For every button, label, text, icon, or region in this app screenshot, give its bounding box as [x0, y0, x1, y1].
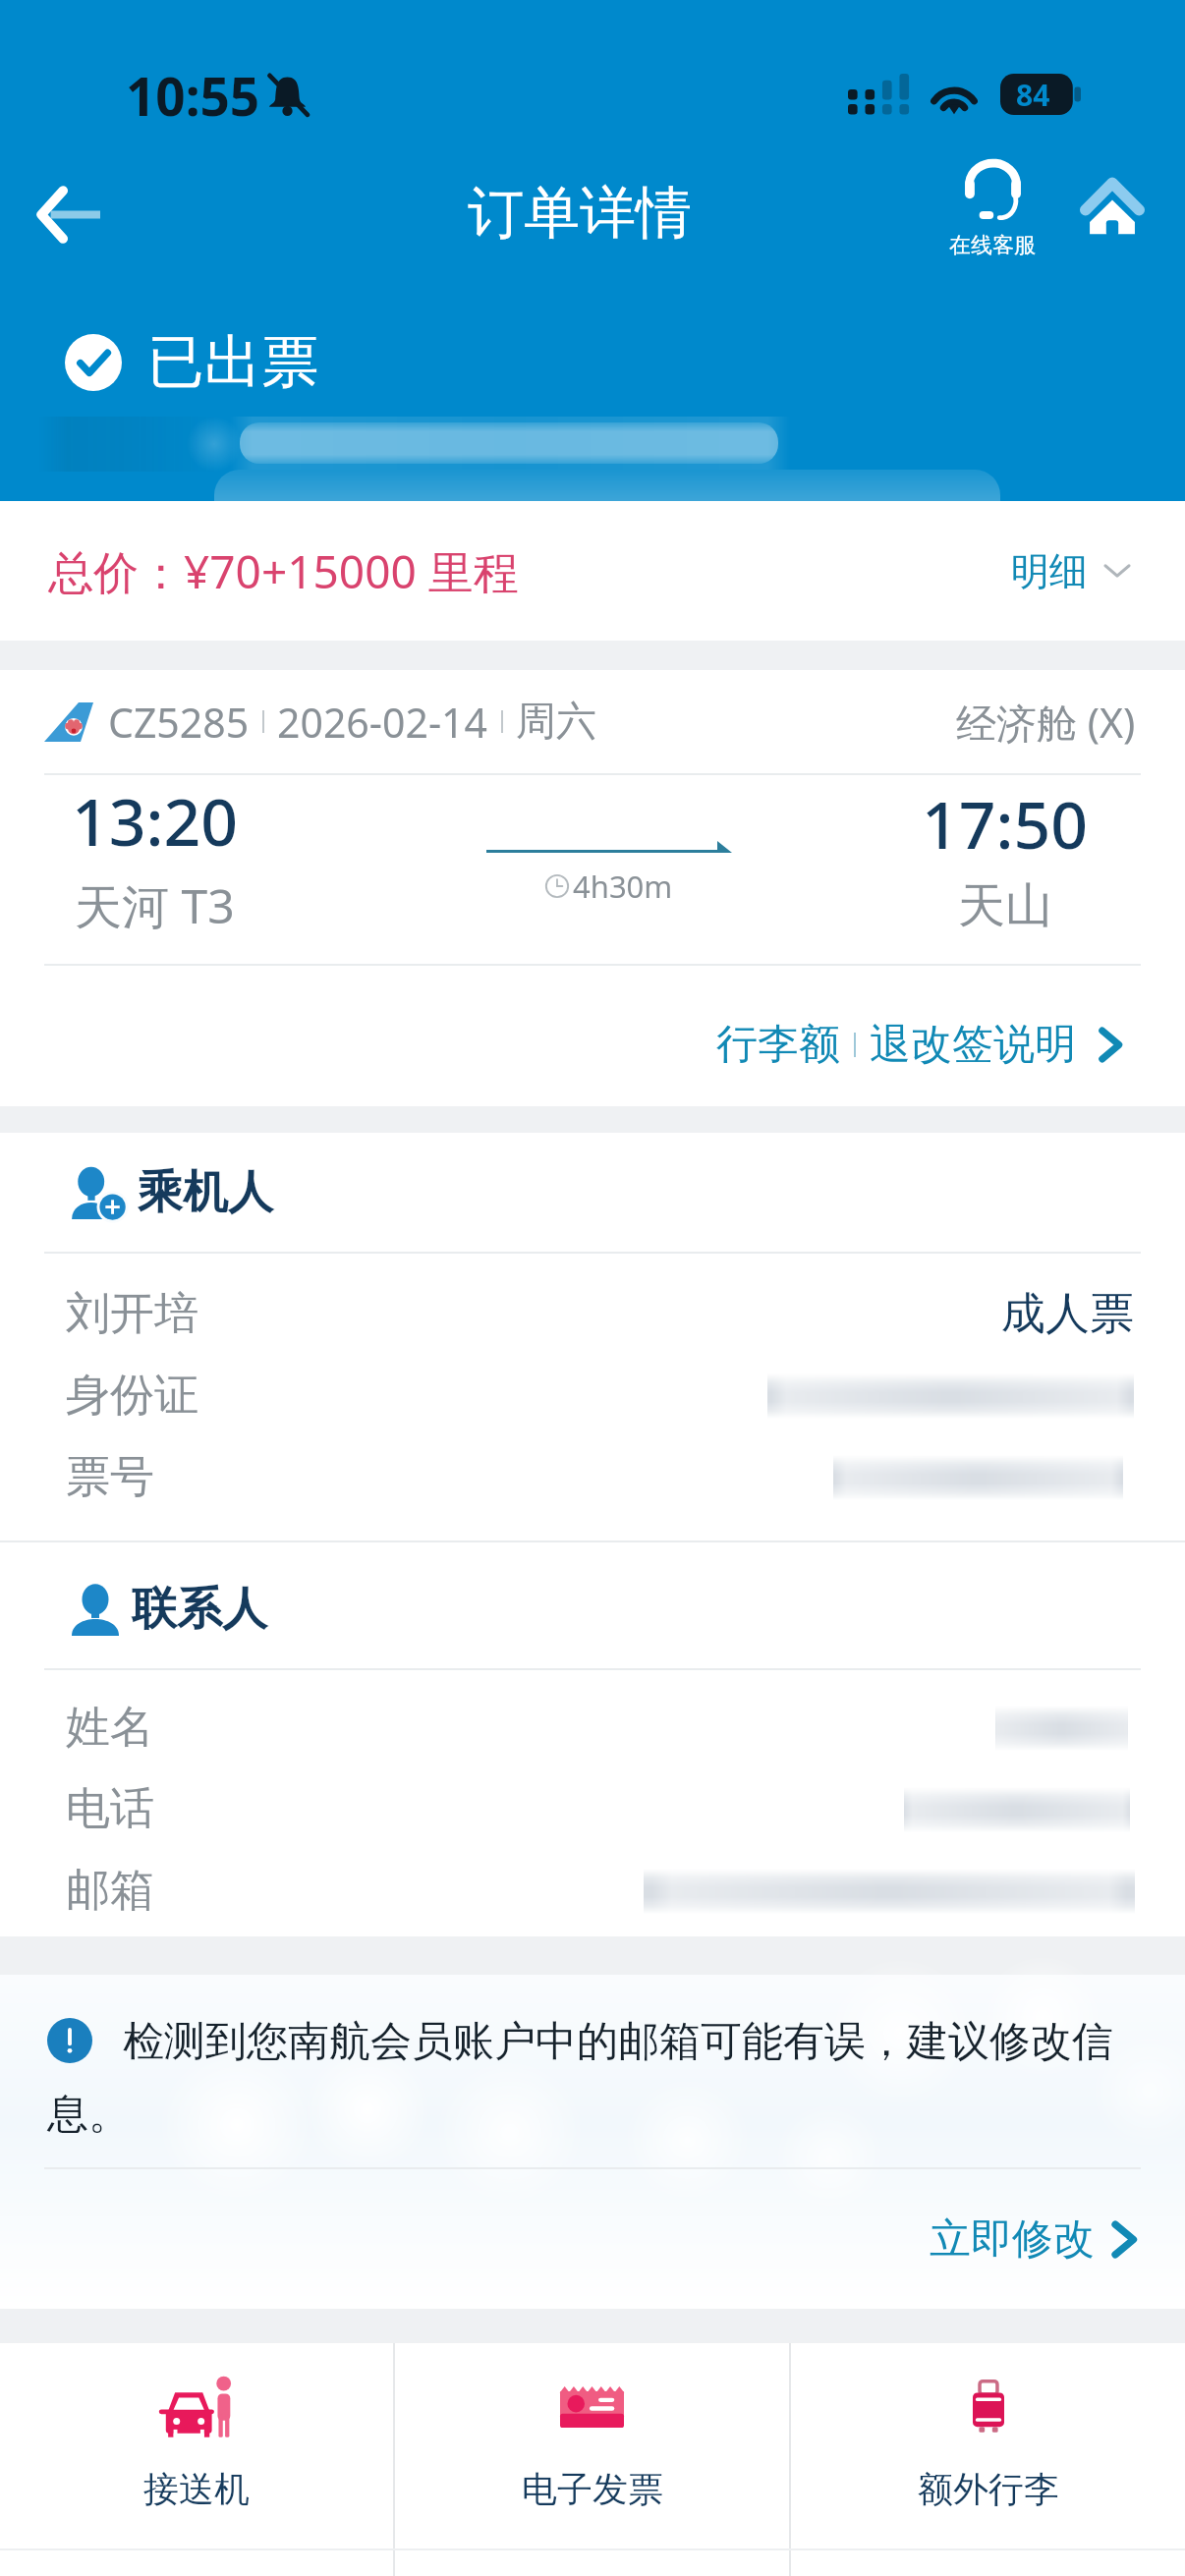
staticText: 经济舱 (X) [956, 695, 1136, 750]
staticText: 行李额 [716, 1019, 840, 1071]
staticText: 乘机人 [138, 1164, 273, 1221]
staticText: 身份证 [66, 1368, 198, 1424]
staticText: 检测到您南航会员账户中的邮箱可能有误，建议修改信息。 [47, 2011, 1150, 2141]
staticText: 电话 [66, 1781, 154, 1837]
staticText: 天河 T3 [75, 873, 235, 938]
staticText: 已出票 [147, 326, 318, 398]
staticText: 姓名 [66, 1700, 154, 1756]
staticText: 天山 [958, 876, 1052, 935]
button[interactable]: 行李额 [0, 966, 1185, 1106]
staticText: 明细 [1011, 547, 1088, 595]
staticText: 2026-02-14 [277, 695, 488, 750]
staticText: 订单详情 [468, 178, 692, 249]
staticText: 4h30m [573, 866, 673, 907]
button[interactable]: 立即修改 [0, 2169, 1185, 2309]
staticText: 17:50 [922, 779, 1088, 868]
button[interactable]: 电子发票 [395, 2343, 789, 2576]
button[interactable]: 总价：¥70+15000 里程 [0, 501, 1185, 641]
staticText: 在线客服 [949, 232, 1036, 259]
staticText: 退改签说明 [870, 1019, 1076, 1071]
staticText: 刘开培 [66, 1286, 198, 1342]
button[interactable]: 额外行李 [791, 2343, 1185, 2576]
button[interactable]: 接送机 [0, 2343, 393, 2576]
button[interactable]: Home [1067, 158, 1157, 252]
staticText: 接送机 [143, 2467, 250, 2511]
button[interactable]: 在线客服 [926, 157, 1059, 267]
staticText: 票号 [66, 1449, 154, 1505]
staticText: 总价：¥70+15000 里程 [48, 540, 519, 602]
staticText: 立即修改 [930, 2213, 1095, 2266]
staticText: CZ5285 [108, 695, 250, 750]
staticText: 周六 [516, 697, 596, 748]
staticText: 邮箱 [66, 1863, 154, 1919]
staticText: 电子发票 [522, 2467, 663, 2511]
staticText: 联系人 [132, 1581, 267, 1638]
staticText: 84 [1016, 75, 1050, 115]
staticText: 成人票 [1001, 1286, 1134, 1342]
staticText: 10:55 [126, 60, 260, 131]
button[interactable]: Back [5, 145, 133, 283]
staticText: 13:20 [72, 776, 238, 865]
staticText: 额外行李 [918, 2467, 1059, 2511]
